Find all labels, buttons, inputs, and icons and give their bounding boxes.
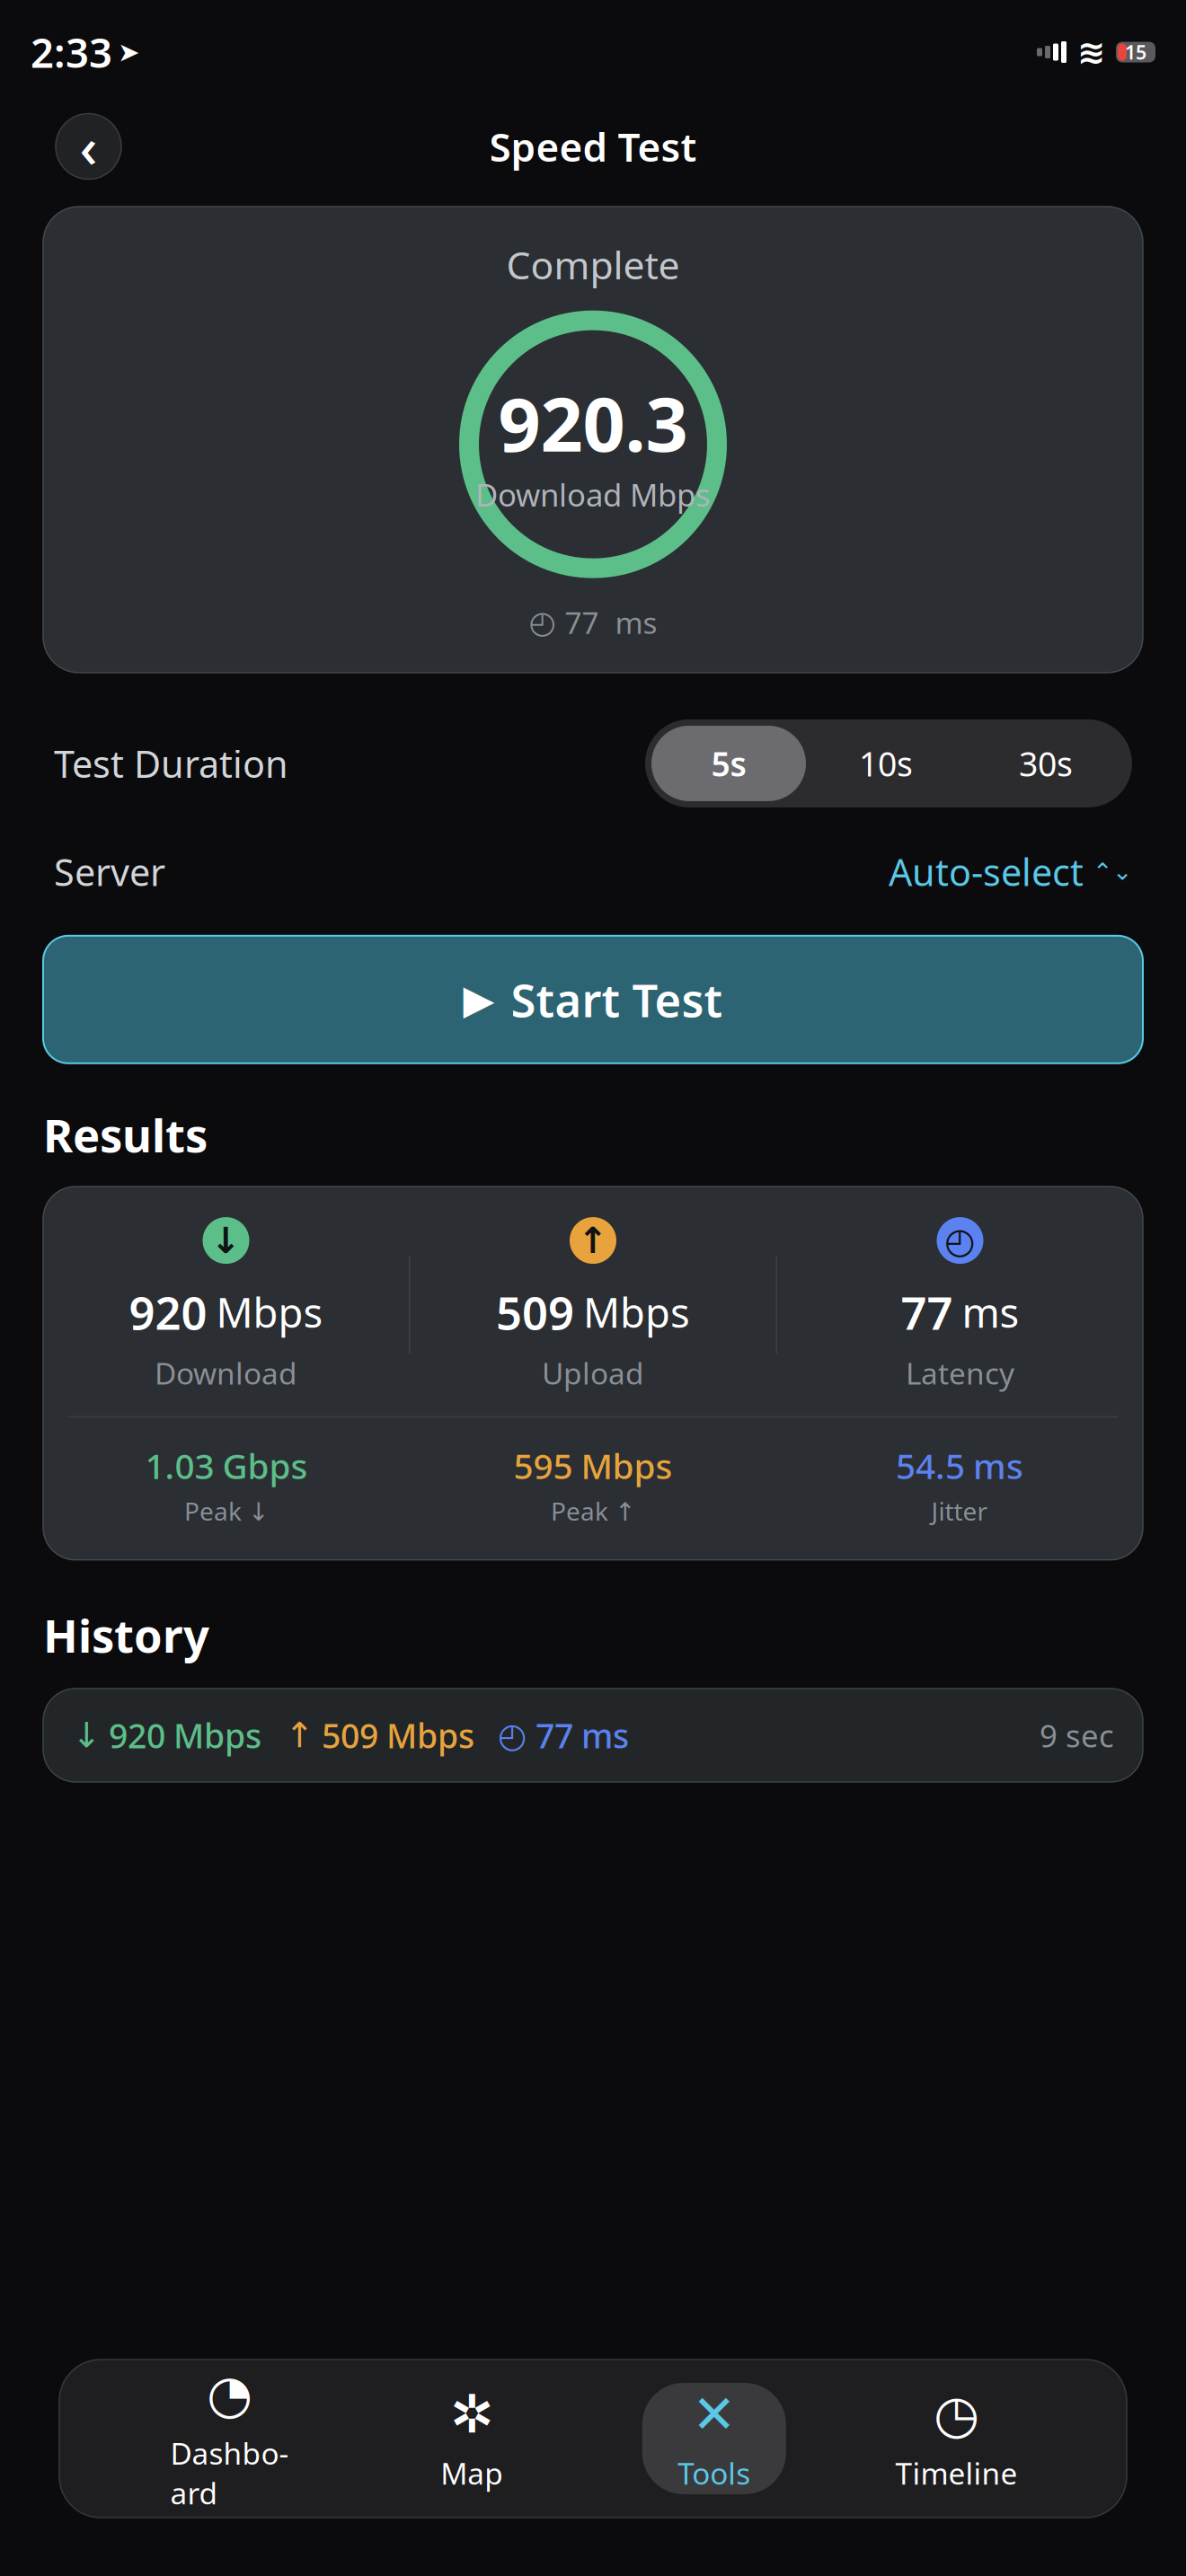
staticText: 15 (1125, 39, 1146, 65)
staticText: ms (962, 1285, 1019, 1339)
staticText: ↓ (72, 1716, 101, 1755)
button[interactable]: 30s (966, 726, 1126, 801)
button[interactable]: Auto-select (889, 847, 1132, 896)
staticText: 509 (496, 1282, 574, 1342)
button[interactable]: ✲ (400, 2383, 544, 2494)
staticText: 595 (513, 1443, 573, 1489)
staticText: 77 ms (565, 602, 657, 642)
staticText: Jitter (931, 1494, 988, 1528)
staticText: 30s (1019, 741, 1073, 786)
staticText: 920.3 (498, 373, 688, 472)
staticText: ✕ (692, 2384, 736, 2444)
staticText: ≋ (1077, 33, 1105, 71)
staticText: Peak ↑ (551, 1494, 635, 1528)
button[interactable]: ◷ (884, 2383, 1028, 2494)
staticText: ◷ (933, 2384, 979, 2444)
staticText: Mbps (581, 1443, 673, 1489)
button[interactable]: Back (56, 114, 121, 179)
staticText: Auto-select (889, 847, 1084, 896)
staticText: Results (43, 1105, 208, 1165)
staticText: 920 (129, 1282, 207, 1342)
staticText: Upload (542, 1353, 644, 1393)
staticText: 2:33 (31, 25, 112, 79)
staticText: ◴ (529, 605, 556, 640)
staticText: 54.5 (896, 1443, 965, 1489)
button[interactable]: ↓ (43, 1689, 1143, 1782)
staticText: Dashboard (170, 2433, 289, 2513)
staticText: ⌃⌄ (1093, 858, 1132, 885)
staticText: 920 (109, 1713, 165, 1758)
staticText: Download (155, 1353, 297, 1393)
staticText: ◔ (207, 2364, 253, 2424)
staticText: 10s (859, 741, 913, 786)
staticText: Mbps (583, 1285, 690, 1339)
staticText: ↑ (578, 1220, 608, 1261)
staticText: ◴ (498, 1716, 527, 1754)
staticText: Mbps (173, 1713, 261, 1758)
staticText: Map (440, 2453, 503, 2493)
button[interactable]: ◔ (158, 2383, 302, 2494)
staticText: Download Mbps (475, 474, 711, 515)
staticText: 77 (901, 1282, 953, 1342)
staticText: ms (581, 1713, 629, 1758)
button[interactable]: 5s (651, 726, 806, 801)
staticText: Complete (506, 239, 680, 290)
staticText: Start Test (511, 969, 723, 1030)
staticText: Timeline (895, 2453, 1017, 2493)
staticText: ms (973, 1443, 1023, 1489)
staticText: ✲ (450, 2384, 494, 2444)
staticText: 1.03 (145, 1443, 214, 1489)
staticText: 5s (711, 741, 746, 786)
staticText: ▶ (463, 976, 495, 1023)
staticText: Server (54, 847, 165, 896)
staticText: Peak ↓ (184, 1494, 269, 1528)
staticText: Speed Test (489, 120, 697, 173)
staticText: ↓ (211, 1220, 241, 1261)
staticText: Test Duration (54, 739, 288, 788)
staticText: 77 (535, 1713, 573, 1758)
staticText: ↑ (285, 1716, 314, 1755)
staticText: Mbps (216, 1285, 323, 1339)
button[interactable]: ▶ (43, 936, 1143, 1063)
button[interactable]: 10s (806, 726, 966, 801)
staticText: Tools (678, 2453, 751, 2493)
staticText: Gbps (222, 1443, 308, 1489)
staticText: ◴ (944, 1220, 976, 1261)
staticText: 509 (322, 1713, 378, 1758)
button[interactable]: ✕ (642, 2383, 786, 2494)
staticText: History (43, 1605, 209, 1665)
staticText: ➤ (118, 37, 140, 67)
staticText: 9 sec (1040, 1715, 1114, 1756)
staticText: ‹ (80, 110, 97, 183)
staticText: Latency (906, 1353, 1014, 1393)
staticText: Mbps (386, 1713, 474, 1758)
